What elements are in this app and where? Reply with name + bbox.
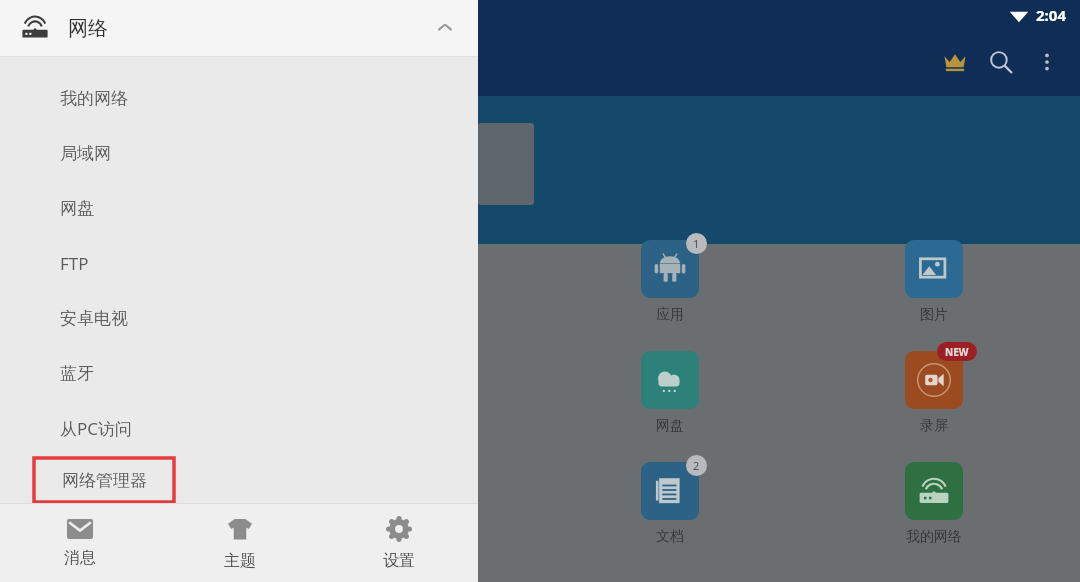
staticText: 主题 [224,551,256,571]
staticText: FTP [60,252,89,275]
staticText: 应用 [656,306,684,324]
staticText: 设置 [383,551,415,571]
staticText: 网盘 [656,417,684,435]
button[interactable]: 图片 [888,237,980,324]
staticText: 安卓电视 [60,308,128,329]
button[interactable]: 蓝牙 [0,346,478,401]
staticText: 图片 [920,306,948,324]
staticText: 蓝牙 [60,363,94,384]
button[interactable]: 2 [624,459,716,546]
staticText: 我的网络 [60,88,128,109]
staticText: 1 [693,236,700,251]
button[interactable]: More options [1024,39,1070,85]
staticText: 我的网络 [906,528,962,546]
staticText: NEW [945,345,969,359]
button[interactable]: FTP [0,236,478,291]
button[interactable]: 从PC访问 [0,401,478,456]
button[interactable]: 我的网络 [888,459,980,546]
button[interactable]: NEW [888,348,980,435]
button[interactable]: 网盘 [624,348,716,435]
button[interactable]: 安卓电视 [0,291,478,346]
staticText: 录屏 [920,417,948,435]
staticText: 网络 [68,16,108,41]
button[interactable]: 消息 [0,504,160,582]
staticText: 消息 [64,548,96,568]
button[interactable]: 主题 [160,504,319,582]
button[interactable]: 1 [624,237,716,324]
staticText: 局域网 [60,143,111,164]
staticText: 网盘 [60,198,94,219]
button[interactable]: Premium [932,39,978,85]
button[interactable]: 网络管理器 [0,456,478,503]
staticText: 网络管理器 [62,470,147,491]
button[interactable]: Search [978,39,1024,85]
button[interactable]: 局域网 [0,126,478,181]
button[interactable]: 设置 [319,504,478,582]
button[interactable]: 我的网络 [0,71,478,126]
staticText: 从PC访问 [60,417,133,440]
staticText: 文档 [656,528,684,546]
button[interactable]: 网盘 [0,181,478,236]
staticText: 2 [693,458,700,473]
staticText: 2:04 [1036,5,1066,25]
button[interactable]: 网络 [0,0,478,56]
